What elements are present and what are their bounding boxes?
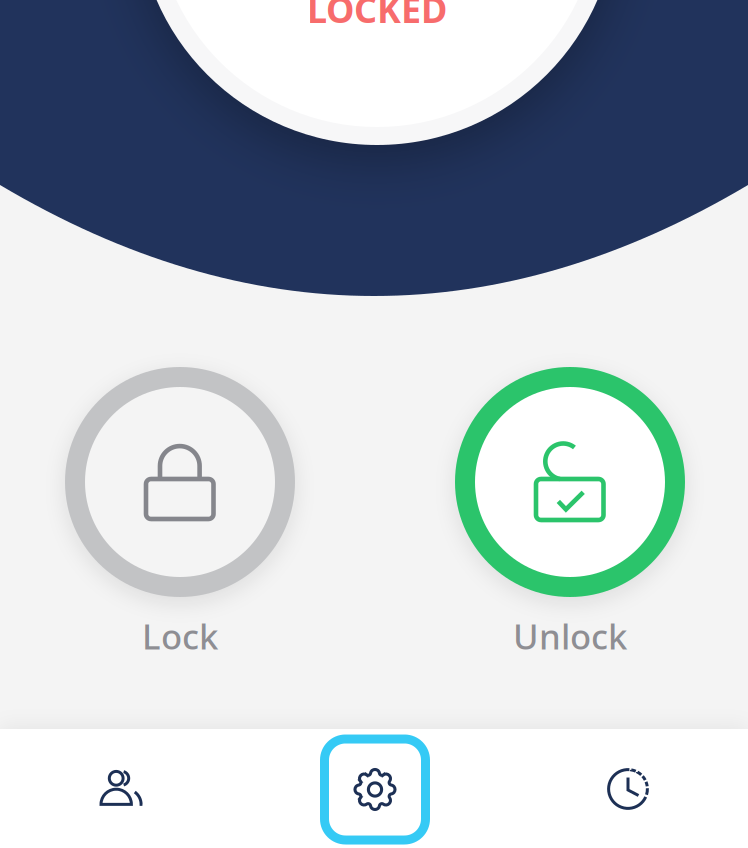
button[interactable]: History xyxy=(508,729,748,848)
staticText: LOCKED xyxy=(307,0,447,33)
button[interactable]: Unlock xyxy=(455,367,685,659)
staticText: Lock xyxy=(142,613,218,659)
button[interactable]: People xyxy=(0,729,242,848)
button[interactable]: Settings xyxy=(242,729,508,848)
staticText: Unlock xyxy=(513,613,627,659)
button[interactable]: Lock xyxy=(65,367,295,659)
